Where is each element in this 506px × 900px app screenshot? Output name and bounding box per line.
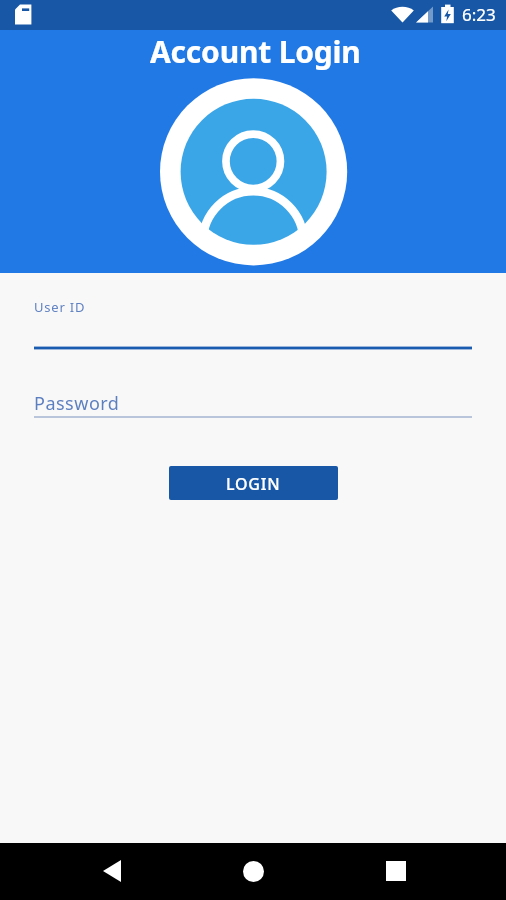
staticText: Account Login (150, 31, 361, 72)
button[interactable]: Recent apps (372, 847, 420, 895)
button[interactable]: LOGIN (169, 466, 338, 500)
staticText: 6:23 (462, 3, 496, 26)
staticText: LOGIN (226, 473, 281, 495)
staticText: User ID (34, 298, 86, 316)
button[interactable]: Home (229, 847, 277, 895)
button[interactable]: Back (88, 847, 136, 895)
staticText: Password (34, 391, 120, 416)
